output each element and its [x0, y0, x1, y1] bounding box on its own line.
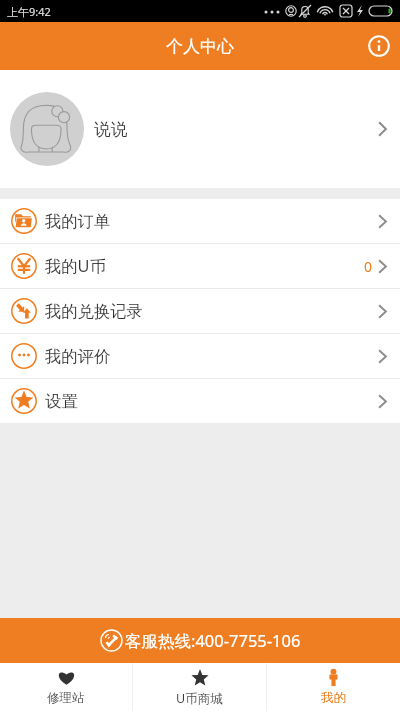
- staticText: 修理站: [47, 690, 85, 706]
- button[interactable]: 我的U币: [0, 244, 400, 288]
- staticText: 我的评价: [45, 346, 111, 367]
- button[interactable]: 修理站: [0, 663, 132, 711]
- staticText: U币商城: [176, 690, 223, 707]
- staticText: 设置: [45, 391, 78, 412]
- button[interactable]: 我的: [267, 663, 400, 711]
- button[interactable]: 说说: [0, 70, 400, 188]
- staticText: 0: [364, 257, 373, 276]
- button[interactable]: 我的评价: [0, 334, 400, 378]
- staticText: 我的兑换记录: [45, 301, 143, 322]
- button[interactable]: 我的订单: [0, 199, 400, 243]
- staticText: 个人中心: [166, 36, 234, 57]
- staticText: 说说: [94, 119, 128, 140]
- staticText: 我的订单: [45, 211, 111, 232]
- staticText: 客服热线:400-7755-106: [125, 629, 301, 652]
- button[interactable]: 我的兑换记录: [0, 289, 400, 333]
- staticText: 上午9:42: [7, 4, 51, 19]
- staticText: 我的: [321, 690, 346, 706]
- button[interactable]: 设置: [0, 379, 400, 423]
- button[interactable]: 客服热线:400-7755-106: [0, 618, 400, 663]
- staticText: 我的U币: [45, 255, 106, 277]
- button[interactable]: Info: [364, 31, 394, 61]
- button[interactable]: U币商城: [133, 663, 266, 711]
